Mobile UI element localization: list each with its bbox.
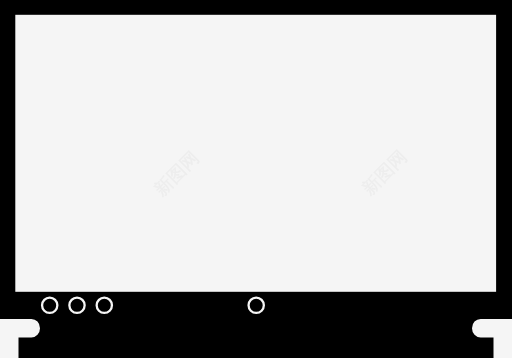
button[interactable]: Television [0, 0, 512, 358]
